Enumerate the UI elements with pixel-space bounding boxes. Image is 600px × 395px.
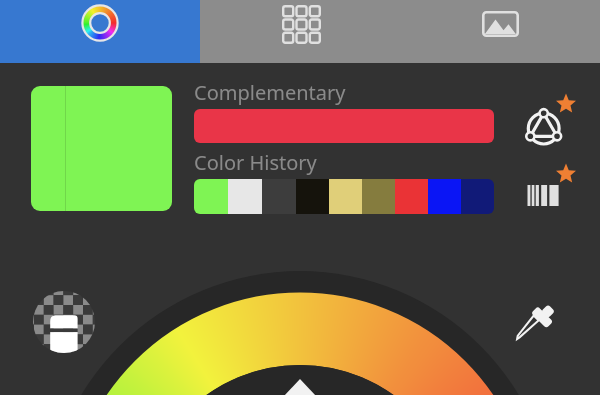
staticText: Color History bbox=[194, 149, 317, 176]
button[interactable]: Complementary colour bbox=[194, 109, 494, 143]
button[interactable]: Image bbox=[400, 0, 600, 63]
staticText: Complementary bbox=[194, 79, 346, 106]
button[interactable]: Transparency bbox=[33, 291, 95, 353]
button[interactable]: Selected colour bbox=[31, 86, 172, 211]
button[interactable]: History colour bbox=[461, 179, 494, 214]
button[interactable]: Colour palette bbox=[518, 160, 580, 210]
button[interactable]: Swatches bbox=[200, 0, 400, 63]
button[interactable]: History colour bbox=[194, 179, 228, 214]
button[interactable]: Color wheel bbox=[0, 0, 200, 63]
button[interactable]: Pick colour bbox=[505, 291, 569, 355]
button[interactable]: Colour harmony bbox=[518, 90, 580, 148]
